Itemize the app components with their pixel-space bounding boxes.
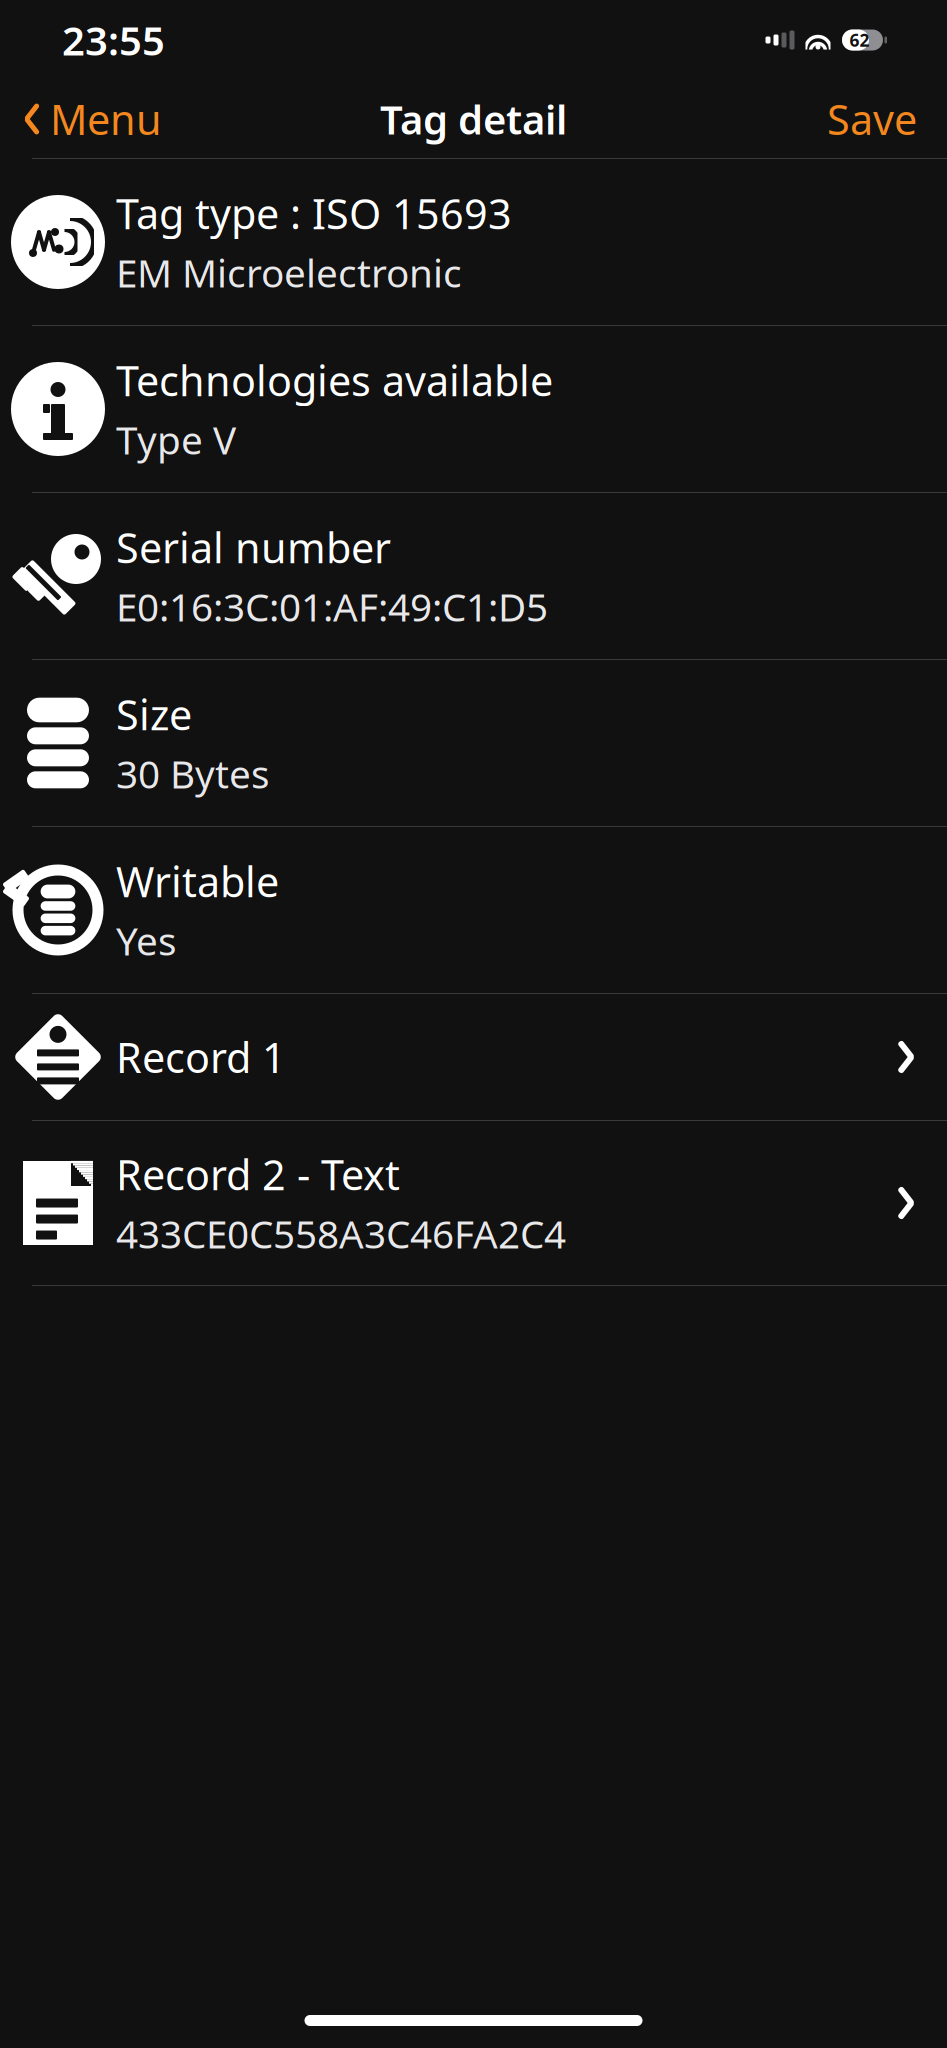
staticText: Size [116,687,192,742]
staticText: Type V [116,414,236,465]
staticText: Record 1 [116,1030,286,1084]
staticText: Tag type : ISO 15693 [116,186,512,241]
staticText: E0:16:3C:01:AF:49:C1:D5 [116,581,548,632]
staticText: EM Microelectronic [116,247,462,298]
staticText: 433CE0C558A3C46FA2C4 [116,1208,566,1259]
staticText: Technologies available [116,353,553,408]
staticText: Writable [116,854,279,909]
staticText: Record 2 - Text [116,1147,400,1202]
staticText: Tag detail [380,92,567,145]
staticText: Serial number [116,520,391,575]
button[interactable]: Record 1 [0,994,947,1120]
staticText: 30 Bytes [116,748,270,799]
button[interactable]: Menu [0,84,162,154]
staticText: Yes [116,915,177,966]
button[interactable]: Record 2 - Text [0,1121,947,1285]
staticText: 62 [849,28,869,51]
staticText: 23:55 [62,13,165,66]
staticText: Menu [50,92,162,146]
staticText: Save [827,92,917,146]
button[interactable]: Save [827,84,947,154]
